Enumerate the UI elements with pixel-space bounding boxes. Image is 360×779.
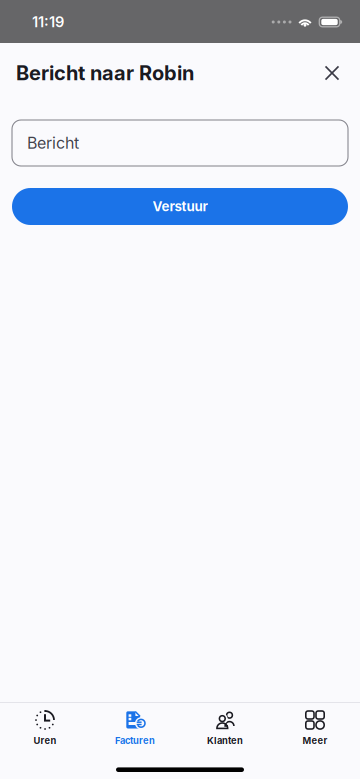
button[interactable]: Sluiten: [311, 52, 353, 94]
staticText: Meer: [302, 735, 327, 746]
button[interactable]: Uren: [0, 703, 90, 753]
staticText: 11:19: [32, 13, 64, 31]
staticText: Klanten: [207, 735, 243, 746]
staticText: Bericht naar Robin: [16, 61, 194, 85]
button[interactable]: Meer: [270, 703, 360, 753]
button[interactable]: Klanten: [180, 703, 270, 753]
staticText: Facturen: [115, 735, 155, 746]
button[interactable]: Facturen: [90, 703, 180, 753]
staticText: Uren: [33, 735, 56, 746]
button[interactable]: Verstuur: [12, 188, 348, 225]
staticText: Bericht: [27, 133, 79, 153]
staticText: Verstuur: [152, 198, 207, 214]
